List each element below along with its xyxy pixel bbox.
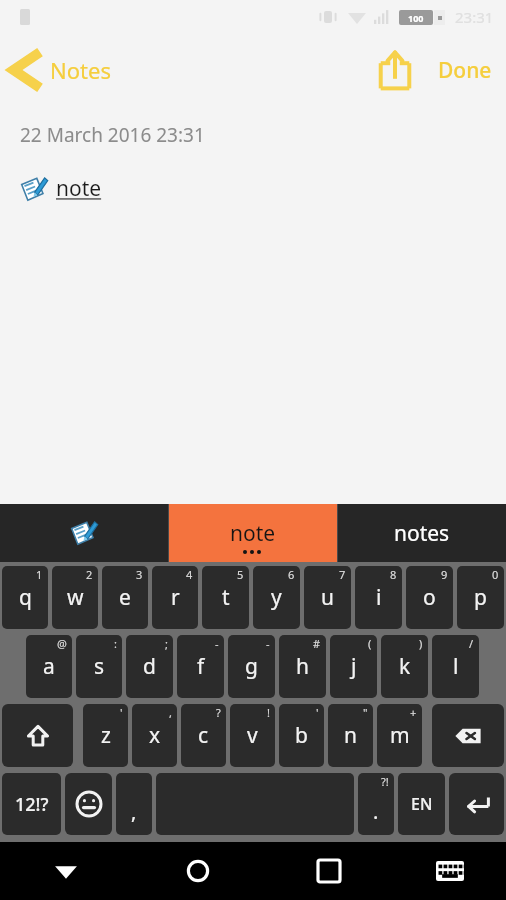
staticText: ( xyxy=(368,636,372,651)
staticText: y xyxy=(271,583,282,612)
staticText: , xyxy=(131,798,137,825)
staticText: Notes xyxy=(50,55,111,85)
button[interactable]: Switch keyboard xyxy=(394,842,506,900)
button[interactable]: 9 xyxy=(406,566,453,629)
staticText: ' xyxy=(316,705,319,720)
button[interactable]: ' xyxy=(83,704,128,767)
button[interactable]: 8 xyxy=(355,566,402,629)
button[interactable]: 2 xyxy=(52,566,98,629)
staticText: : xyxy=(114,636,117,651)
staticText: 6 xyxy=(288,567,295,582)
staticText: m xyxy=(390,721,410,750)
staticText: i xyxy=(376,583,382,612)
button[interactable]: / xyxy=(432,635,479,698)
staticText: o xyxy=(423,583,436,612)
button[interactable]: , xyxy=(132,704,177,767)
button[interactable]: + xyxy=(377,704,422,767)
staticText: g xyxy=(245,652,258,681)
button[interactable]: - xyxy=(177,635,224,698)
staticText: p xyxy=(474,583,487,612)
button[interactable]: Shift xyxy=(2,704,73,767)
button[interactable]: 7 xyxy=(304,566,351,629)
staticText: + xyxy=(410,705,417,720)
button[interactable]: 6 xyxy=(253,566,300,629)
button[interactable]: " xyxy=(328,704,373,767)
staticText: d xyxy=(143,652,156,681)
staticText: c xyxy=(198,721,209,750)
staticText: ; xyxy=(165,636,168,651)
staticText: , xyxy=(169,705,172,720)
button[interactable]: 12!? xyxy=(2,773,61,835)
button[interactable]: ? xyxy=(181,704,226,767)
button[interactable]: ) xyxy=(381,635,428,698)
staticText: - xyxy=(266,636,270,651)
staticText: note xyxy=(56,174,102,203)
button[interactable]: ( xyxy=(330,635,377,698)
button[interactable]: Recents xyxy=(263,842,394,900)
button[interactable]: EN xyxy=(398,773,445,835)
button[interactable]: Emoji suggestion xyxy=(0,504,168,562)
staticText: 7 xyxy=(339,567,346,582)
button[interactable]: - xyxy=(228,635,275,698)
staticText: k xyxy=(399,652,411,681)
button[interactable]: @ xyxy=(26,635,72,698)
staticText: j xyxy=(351,652,357,681)
button[interactable]: 1 xyxy=(2,566,48,629)
staticText: z xyxy=(101,721,111,750)
staticText: b xyxy=(295,721,308,750)
button[interactable]: , xyxy=(116,773,152,835)
staticText: 1 xyxy=(36,567,43,582)
button[interactable]: Enter xyxy=(449,773,504,835)
button[interactable]: ! xyxy=(230,704,275,767)
staticText: 12!? xyxy=(15,792,49,817)
staticText: @ xyxy=(57,636,67,651)
staticText: ?! xyxy=(381,774,389,789)
staticText: EN xyxy=(411,793,433,815)
staticText: 3 xyxy=(136,567,143,582)
button[interactable]: Backspace xyxy=(432,704,504,767)
staticText: t xyxy=(222,583,230,612)
staticText: / xyxy=(469,636,474,651)
button[interactable]: ?! xyxy=(358,773,394,835)
staticText: s xyxy=(94,652,105,681)
staticText: ) xyxy=(419,636,423,651)
button[interactable]: notes xyxy=(338,504,506,562)
staticText: 8 xyxy=(390,567,397,582)
button[interactable]: 4 xyxy=(152,566,198,629)
staticText: l xyxy=(453,652,459,681)
button[interactable]: ' xyxy=(279,704,324,767)
staticText: r xyxy=(171,583,180,612)
staticText: 22 March 2016 23:31 xyxy=(20,122,205,148)
button[interactable]: 3 xyxy=(102,566,148,629)
staticText: 2 xyxy=(86,567,93,582)
staticText: f xyxy=(197,652,205,681)
staticText: n xyxy=(344,721,357,750)
staticText: - xyxy=(215,636,219,651)
staticText: 100 xyxy=(408,12,424,24)
button[interactable]: Hide keyboard xyxy=(0,842,132,900)
button[interactable]: Share xyxy=(366,41,424,99)
staticText: 5 xyxy=(237,567,244,582)
staticText: e xyxy=(119,583,131,612)
staticText: " xyxy=(363,705,368,720)
staticText: ' xyxy=(120,705,123,720)
button[interactable]: 5 xyxy=(202,566,249,629)
button[interactable]: Home xyxy=(132,842,263,900)
button[interactable]: Notes xyxy=(0,43,119,97)
button[interactable]: Emoji xyxy=(65,773,112,835)
button[interactable]: 0 xyxy=(457,566,504,629)
button[interactable]: note xyxy=(169,504,337,562)
button[interactable]: # xyxy=(279,635,326,698)
staticText: . xyxy=(373,798,379,825)
staticText: w xyxy=(67,583,84,612)
staticText: a xyxy=(43,652,55,681)
button[interactable]: : xyxy=(76,635,122,698)
button[interactable]: ; xyxy=(126,635,173,698)
staticText: ? xyxy=(216,705,221,720)
staticText: x xyxy=(149,721,161,750)
staticText: u xyxy=(321,583,334,612)
staticText: v xyxy=(247,721,258,750)
button[interactable]: Done xyxy=(424,46,506,95)
staticText: 9 xyxy=(441,567,448,582)
